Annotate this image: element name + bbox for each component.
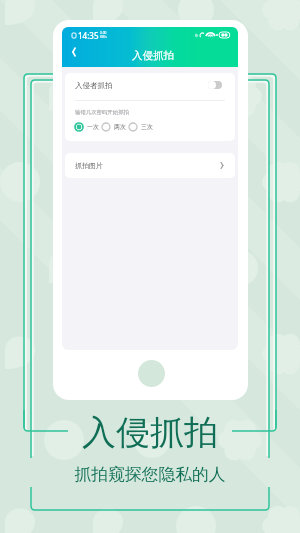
button[interactable]: 两次 — [101, 122, 126, 132]
button[interactable]: 三次 — [128, 122, 153, 132]
button[interactable]: Toggle intruder capture — [208, 81, 222, 89]
staticText: 一次 — [87, 123, 99, 131]
other: Open — [217, 161, 226, 170]
staticText: 两次 — [114, 123, 126, 131]
staticText: 0.00 — [100, 31, 107, 35]
staticText: 入侵抓拍 — [65, 49, 238, 62]
button[interactable]: 入侵者抓拍 — [65, 73, 235, 97]
staticText: 三次 — [141, 123, 153, 131]
button[interactable]: 一次 — [74, 122, 99, 132]
staticText: 14:35 — [78, 30, 99, 41]
button[interactable]: Back — [66, 44, 82, 60]
staticText: 抓拍窥探您隐私的人 — [0, 464, 300, 485]
staticText: 入侵者抓拍 — [75, 81, 113, 90]
staticText: 抓拍图片 — [75, 161, 103, 170]
staticText: KB/s — [100, 35, 107, 39]
staticText: 入侵抓拍 — [0, 411, 300, 454]
button[interactable]: 抓拍图片 — [65, 153, 235, 178]
staticText: 输错几次密码开始抓拍 — [75, 109, 129, 116]
